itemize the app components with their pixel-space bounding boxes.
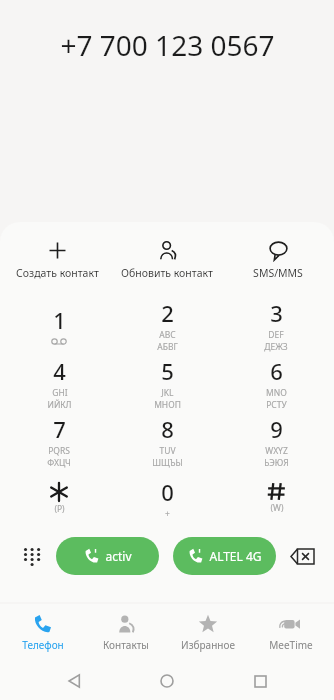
staticText: Контакты xyxy=(103,638,149,652)
staticText: Избранное xyxy=(181,638,235,652)
staticText: +7 700 123 0567 xyxy=(60,26,275,64)
staticText: ДЕЖЗ xyxy=(264,341,288,353)
staticText: 4 xyxy=(53,356,66,386)
button[interactable]: 1 xyxy=(9,296,109,354)
staticText: ФХЦЧ xyxy=(47,457,71,469)
staticText: MNO xyxy=(266,387,287,399)
button[interactable]: Recents xyxy=(241,662,279,700)
staticText: 3 xyxy=(270,298,283,328)
staticText: 9 xyxy=(270,414,283,444)
button[interactable]: 4 xyxy=(9,354,109,412)
button[interactable]: 5 xyxy=(117,354,217,412)
staticText: 1 xyxy=(53,305,66,335)
button[interactable]: Обновить контакт xyxy=(113,238,221,282)
button[interactable]: 2 xyxy=(117,296,217,354)
button[interactable]: Delete xyxy=(282,536,322,576)
button[interactable]: 8 xyxy=(117,412,217,470)
staticText: WXYZ xyxy=(265,445,288,457)
button[interactable]: (W) xyxy=(226,470,326,526)
staticText: Обновить контакт xyxy=(121,266,213,280)
staticText: 2 xyxy=(161,298,174,328)
staticText: TUV xyxy=(159,445,176,457)
staticText: 0 xyxy=(161,477,174,507)
staticText: SMS/MMS xyxy=(253,266,303,280)
button[interactable]: Создать контакт xyxy=(3,238,111,282)
button[interactable]: 3 xyxy=(226,296,326,354)
button[interactable]: 0 xyxy=(117,470,217,526)
button[interactable]: 9 xyxy=(226,412,326,470)
staticText: ALTEL 4G xyxy=(209,548,262,564)
staticText: Телефон xyxy=(22,638,64,652)
button[interactable]: activ xyxy=(56,537,159,575)
button[interactable]: MeeTime xyxy=(251,610,331,656)
staticText: 8 xyxy=(161,414,174,444)
staticText: ABC xyxy=(159,329,176,341)
staticText: 5 xyxy=(161,356,174,386)
button[interactable]: 7 xyxy=(9,412,109,470)
button[interactable]: Контакты xyxy=(86,610,166,656)
staticText: (W) xyxy=(270,502,284,514)
button[interactable]: Back xyxy=(55,662,93,700)
button[interactable]: SMS/MMS xyxy=(224,238,332,282)
staticText: 7 xyxy=(53,414,66,444)
button[interactable]: (P) xyxy=(9,470,109,526)
staticText: JKL xyxy=(161,387,174,399)
button[interactable]: Телефон xyxy=(3,610,83,656)
button[interactable]: ALTEL 4G xyxy=(173,537,276,575)
button[interactable]: Избранное xyxy=(168,610,248,656)
staticText: MeeTime xyxy=(269,638,313,652)
staticText: МНОП xyxy=(154,399,181,411)
button[interactable]: Keypad xyxy=(12,536,52,576)
staticText: ЬЭЮЯ xyxy=(264,457,289,469)
staticText: PQRS xyxy=(48,445,70,457)
staticText: РСТУ xyxy=(266,399,287,411)
staticText: (P) xyxy=(54,503,65,515)
staticText: GHI xyxy=(52,387,68,399)
staticText: Создать контакт xyxy=(16,266,99,280)
button[interactable]: 6 xyxy=(226,354,326,412)
staticText: 6 xyxy=(270,356,283,386)
button[interactable]: Home xyxy=(148,662,186,700)
staticText: ШЩЪЫ xyxy=(152,457,183,469)
staticText: DEF xyxy=(268,329,284,341)
staticText: + xyxy=(165,508,170,520)
staticText: АБВГ xyxy=(157,341,178,353)
staticText: activ xyxy=(105,548,132,564)
staticText: ИЙКЛ xyxy=(47,399,72,411)
